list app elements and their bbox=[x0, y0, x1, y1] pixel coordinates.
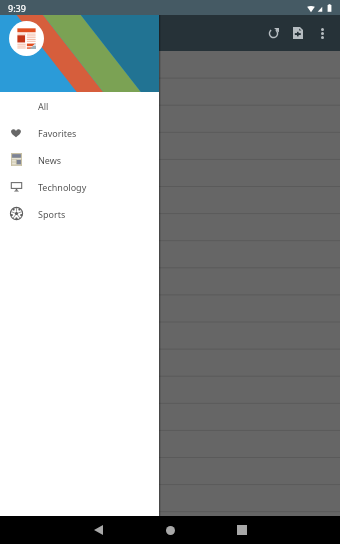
button[interactable]: Favorites bbox=[0, 119, 159, 146]
button[interactable]: Refresh bbox=[260, 16, 286, 50]
button[interactable]: Technology bbox=[0, 173, 159, 200]
staticText: Favorites bbox=[38, 127, 77, 139]
staticText: Technology bbox=[38, 181, 87, 193]
button[interactable]: Open news app bbox=[9, 21, 44, 56]
staticText: All bbox=[38, 100, 49, 112]
staticText: 9:39 bbox=[8, 2, 26, 14]
button[interactable]: New article bbox=[286, 16, 310, 50]
button[interactable]: More options bbox=[310, 16, 334, 50]
button[interactable]: Home bbox=[155, 516, 185, 544]
staticText: News bbox=[38, 154, 62, 166]
staticText: 9:39 bbox=[8, 2, 26, 14]
button[interactable]: Back bbox=[83, 516, 113, 544]
button[interactable]: Recents bbox=[227, 516, 257, 544]
staticText: Sports bbox=[38, 208, 66, 220]
button[interactable]: All bbox=[0, 92, 159, 119]
button[interactable]: Sports bbox=[0, 200, 159, 227]
button[interactable]: News bbox=[0, 146, 159, 173]
